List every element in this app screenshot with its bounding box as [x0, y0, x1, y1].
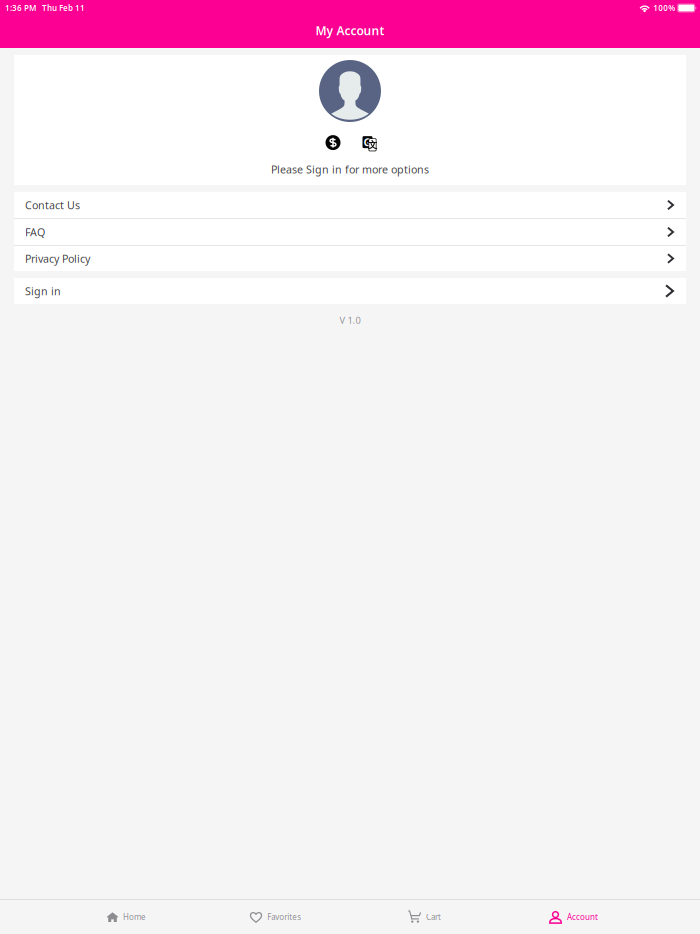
staticText: Please Sign in for more options [271, 162, 429, 176]
button[interactable]: Home [52, 900, 201, 934]
button[interactable]: Favorites [201, 900, 350, 934]
staticText: 文 [368, 139, 377, 151]
staticText: 100% [653, 3, 675, 13]
staticText: Account [567, 912, 598, 922]
staticText: V 1.0 [339, 314, 360, 326]
staticText: G [363, 135, 371, 149]
button[interactable]: Language [360, 135, 374, 150]
staticText: Cart [426, 912, 441, 922]
button[interactable]: FAQ [14, 219, 686, 245]
staticText: Favorites [267, 912, 301, 922]
button[interactable]: Sign in [14, 278, 686, 304]
staticText: Thu Feb 11 [42, 3, 85, 13]
staticText: FAQ [25, 225, 45, 239]
staticText: Privacy Policy [25, 251, 90, 266]
staticText: Home [123, 912, 146, 922]
staticText: 1:36 PM [5, 3, 36, 13]
button[interactable]: Contact Us [14, 192, 686, 218]
staticText: Contact Us [25, 198, 80, 212]
button[interactable]: Cart [350, 900, 499, 934]
button[interactable]: Account [499, 900, 648, 934]
button[interactable]: Currency [325, 135, 340, 150]
button[interactable]: Privacy Policy [14, 246, 686, 271]
staticText: Sign in [25, 284, 61, 298]
staticText: My Account [315, 22, 384, 38]
